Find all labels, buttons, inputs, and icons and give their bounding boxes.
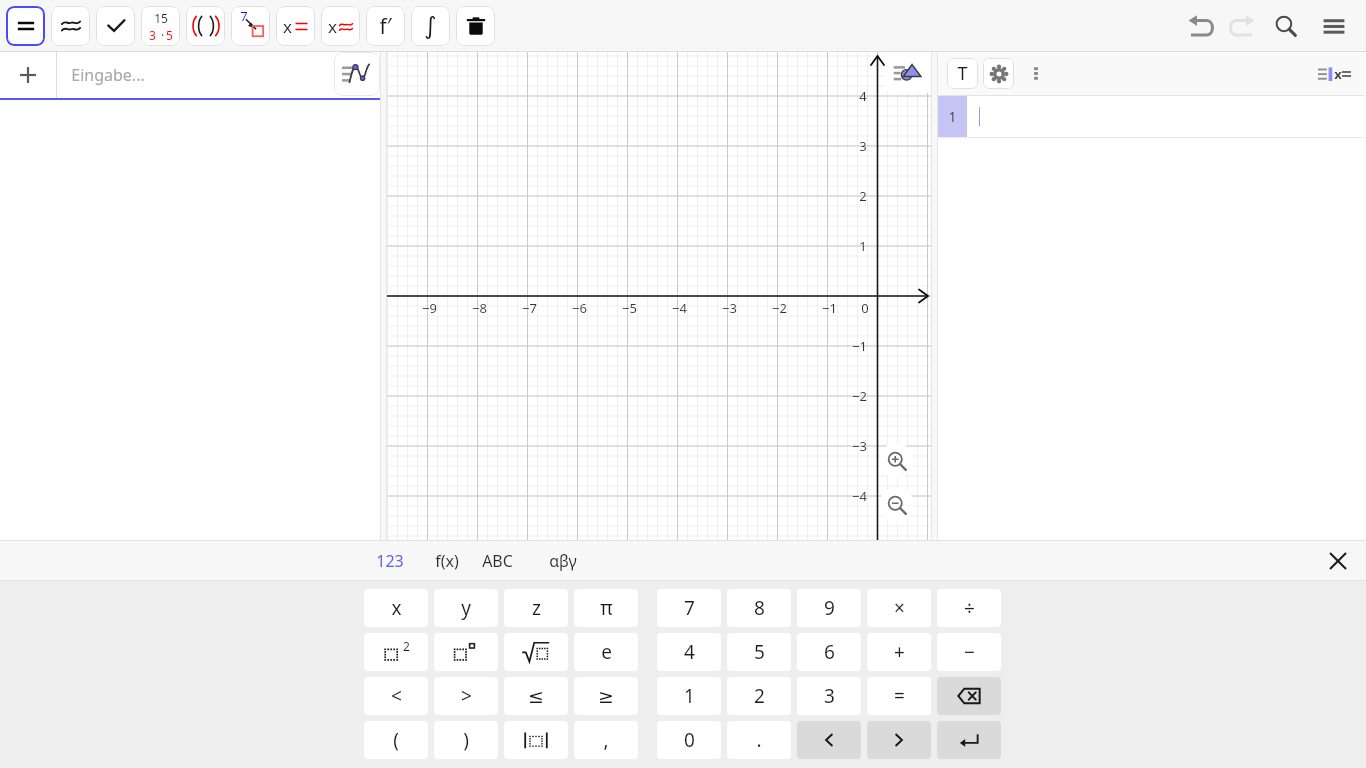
staticText: 1 [948, 107, 957, 126]
button[interactable]: Undo [1181, 4, 1225, 48]
staticText: 2 [859, 187, 867, 205]
staticText: 8 [754, 595, 765, 621]
button[interactable]: ABC [473, 543, 521, 578]
button[interactable]: 2 [727, 677, 791, 715]
button[interactable]: Search [1264, 4, 1308, 48]
button[interactable]: x [364, 589, 428, 627]
staticText: −1 [852, 337, 867, 355]
staticText: 123 [376, 550, 404, 572]
button[interactable]: 8 [727, 589, 791, 627]
button[interactable]: Close keyboard [1320, 543, 1356, 579]
button[interactable]: Tool [456, 6, 495, 46]
button[interactable]: Tool [321, 6, 360, 46]
button[interactable]: αβγ [539, 543, 587, 578]
button[interactable]: Tool [231, 6, 270, 46]
button[interactable]: RET [937, 721, 1001, 759]
button[interactable]: 3 [797, 677, 861, 715]
button[interactable]: Tool [6, 6, 45, 46]
button[interactable]: Settings [983, 58, 1014, 89]
button[interactable]: Tool [51, 6, 90, 46]
button[interactable]: 0 [657, 721, 721, 759]
button[interactable]: Redo [1218, 4, 1262, 48]
button[interactable]: ≤ [504, 677, 568, 715]
staticText: −7 [522, 299, 537, 317]
staticText: −5 [622, 299, 637, 317]
button[interactable]: Tool [186, 6, 225, 46]
button[interactable]: Tool [411, 6, 450, 46]
button[interactable]: Tool [141, 6, 180, 46]
button[interactable]: Algebra view [1310, 54, 1358, 94]
button[interactable]: SQ [364, 633, 428, 671]
button[interactable]: Tool [276, 6, 315, 46]
staticText: 2 [403, 638, 410, 654]
staticText: 0 [861, 299, 869, 317]
button[interactable]: More options [1021, 58, 1051, 88]
button[interactable]: − [937, 633, 1001, 671]
staticText: × [894, 595, 905, 621]
staticText: −4 [672, 299, 687, 317]
staticText: 5 [754, 639, 765, 665]
button[interactable]: 5 [727, 633, 791, 671]
button[interactable]: = [867, 677, 931, 715]
button[interactable]: ÷ [937, 589, 1001, 627]
button[interactable]: π [574, 589, 638, 627]
button[interactable]: 7 [657, 589, 721, 627]
button[interactable]: Style bar [885, 52, 931, 93]
button[interactable]: z [504, 589, 568, 627]
staticText: z [532, 595, 541, 621]
staticText: < [391, 683, 402, 709]
button[interactable]: GT [867, 721, 931, 759]
staticText: 4 [859, 87, 867, 105]
button[interactable]: 6 [797, 633, 861, 671]
button[interactable]: 1 [657, 677, 721, 715]
staticText: . [756, 727, 762, 753]
button[interactable]: Tool [366, 6, 405, 46]
button[interactable]: Graphing view [334, 52, 380, 96]
staticText: > [461, 683, 472, 709]
button[interactable]: AB [504, 721, 568, 759]
button[interactable]: e [574, 633, 638, 671]
staticText: 0 [684, 727, 695, 753]
button[interactable]: Tool [96, 6, 135, 46]
staticText: Eingabe... [71, 64, 145, 86]
staticText: 5 [166, 27, 173, 43]
staticText: −1 [822, 299, 837, 317]
button[interactable]: SR [504, 633, 568, 671]
button[interactable]: 123 [366, 543, 414, 578]
button[interactable]: Zoom out [879, 487, 914, 522]
button[interactable]: × [867, 589, 931, 627]
button[interactable]: > [434, 677, 498, 715]
button[interactable]: 9 [797, 589, 861, 627]
staticText: 3 [824, 683, 835, 709]
staticText: 2 [754, 683, 765, 709]
staticText: ) [463, 727, 469, 753]
staticText: x [283, 15, 292, 38]
button[interactable]: + [867, 633, 931, 671]
staticText: ABC [482, 550, 513, 572]
button[interactable]: , [574, 721, 638, 759]
button[interactable]: ) [434, 721, 498, 759]
button[interactable]: y [434, 589, 498, 627]
staticText: ÷ [964, 595, 975, 621]
button[interactable]: 4 [657, 633, 721, 671]
staticText: ≥ [598, 685, 614, 707]
button[interactable]: . [727, 721, 791, 759]
staticText: 6 [824, 639, 835, 665]
button[interactable]: PW [434, 633, 498, 671]
staticText: 7 [240, 7, 248, 25]
button[interactable]: f(x) [423, 543, 471, 578]
staticText: x [1334, 65, 1342, 83]
staticText: 3 [859, 137, 867, 155]
button[interactable]: LT [797, 721, 861, 759]
staticText: −2 [772, 299, 787, 317]
button[interactable]: ≥ [574, 677, 638, 715]
staticText: 15 [154, 10, 168, 26]
button[interactable]: Add input [0, 52, 56, 98]
button[interactable]: Menu [1312, 4, 1356, 48]
button[interactable]: Text tool [947, 58, 978, 89]
staticText: −3 [852, 437, 867, 455]
button[interactable]: DEL [937, 677, 1001, 715]
button[interactable]: ( [364, 721, 428, 759]
button[interactable]: < [364, 677, 428, 715]
button[interactable]: Zoom in [879, 443, 914, 478]
